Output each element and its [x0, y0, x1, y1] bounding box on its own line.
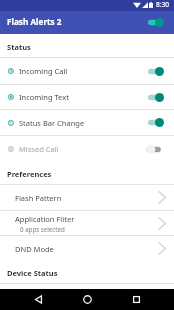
- staticText: Incoming Text: [19, 92, 69, 102]
- staticText: Flash Alerts 2: [7, 16, 62, 27]
- button[interactable]: DND Mode: [0, 236, 174, 261]
- button[interactable]: Flash Pattern: [0, 185, 174, 210]
- staticText: 8:30: [156, 0, 170, 9]
- staticText: Application Filter: [15, 214, 75, 224]
- button[interactable]: Incoming Call: [0, 58, 174, 84]
- button[interactable]: Incoming Text: [0, 85, 174, 109]
- button[interactable]: Back: [19, 289, 57, 310]
- button[interactable]: Missed Call: [0, 136, 174, 162]
- button[interactable]: Enable Flash Alerts: [138, 11, 164, 34]
- staticText: Missed Call: [19, 144, 59, 154]
- staticText: Incoming Call: [19, 66, 68, 76]
- button[interactable]: Application Filter: [0, 211, 174, 235]
- staticText: 0 apps selected: [20, 225, 65, 233]
- staticText: Status: [7, 42, 31, 52]
- button[interactable]: Status Bar Change: [0, 110, 174, 135]
- staticText: DND Mode: [15, 244, 54, 254]
- staticText: Device Status: [7, 268, 58, 278]
- button[interactable]: Recents: [117, 289, 155, 310]
- staticText: Preferences: [7, 169, 52, 179]
- staticText: Flash Pattern: [15, 193, 62, 203]
- staticText: Status Bar Change: [19, 118, 85, 128]
- button[interactable]: Home: [68, 289, 106, 310]
